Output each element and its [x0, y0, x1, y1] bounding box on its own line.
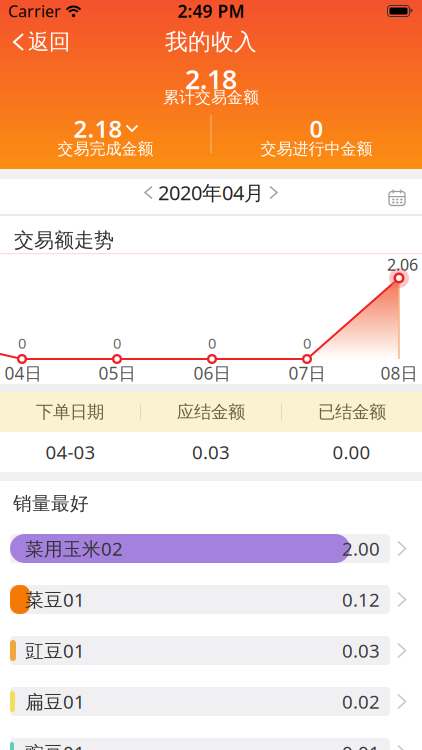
staticText: 0 [208, 333, 216, 353]
staticText: 2:49 PM [177, 0, 244, 22]
staticText: 2.06 [387, 254, 418, 275]
staticText: 已结金额 [318, 401, 386, 423]
staticText: 2.00 [342, 536, 380, 561]
staticText: 菜豆01 [25, 587, 85, 612]
staticText: 交易完成金额 [57, 139, 153, 159]
staticText: 返回 [28, 29, 70, 55]
staticText: 0 [113, 333, 121, 353]
staticText: 04日 [4, 361, 41, 384]
staticText: 2020年04月 [158, 179, 264, 206]
staticText: 交易额走势 [14, 228, 114, 253]
staticText: 下单日期 [36, 401, 104, 423]
staticText: 菜用玉米02 [25, 536, 123, 561]
staticText: 06日 [193, 361, 230, 384]
staticText: 0 [309, 113, 323, 144]
staticText: 应结金额 [177, 401, 245, 423]
button[interactable]: 菜豆01 [0, 585, 422, 614]
button[interactable]: 菜用玉米02 [0, 534, 422, 563]
button[interactable]: 扁豆01 [0, 687, 422, 716]
staticText: 销量最好 [13, 492, 89, 515]
staticText: 我的收入 [165, 28, 257, 56]
button[interactable]: 豇豆01 [0, 636, 422, 665]
button[interactable] [389, 188, 422, 204]
staticText: 05日 [98, 361, 135, 384]
staticText: 0.01 [342, 740, 380, 750]
staticText: 0.00 [333, 440, 371, 464]
staticText: 扁豆01 [25, 689, 85, 714]
button[interactable]: 2020年04月 [145, 179, 277, 206]
staticText: 2.18 [185, 61, 237, 97]
staticText: 04-03 [45, 440, 95, 464]
staticText: 0.02 [342, 689, 380, 714]
staticText: 2.18 [73, 113, 122, 144]
staticText: 08日 [380, 361, 417, 384]
staticText: 0.12 [342, 587, 380, 612]
button[interactable]: 2.18 [73, 113, 137, 144]
staticText: 07日 [288, 361, 325, 384]
staticText: 0.03 [192, 440, 230, 464]
staticText: 累计交易金额 [163, 88, 259, 107]
button[interactable]: 返回 [0, 27, 70, 57]
staticText: Carrier [8, 0, 61, 22]
staticText: 豌豆01 [25, 740, 85, 750]
button[interactable]: 豌豆01 [0, 738, 422, 750]
staticText: 豇豆01 [25, 638, 85, 663]
staticText: 0.03 [342, 638, 380, 663]
staticText: 0 [303, 333, 311, 353]
staticText: 0 [18, 333, 26, 353]
staticText: 交易进行中金额 [260, 139, 372, 159]
